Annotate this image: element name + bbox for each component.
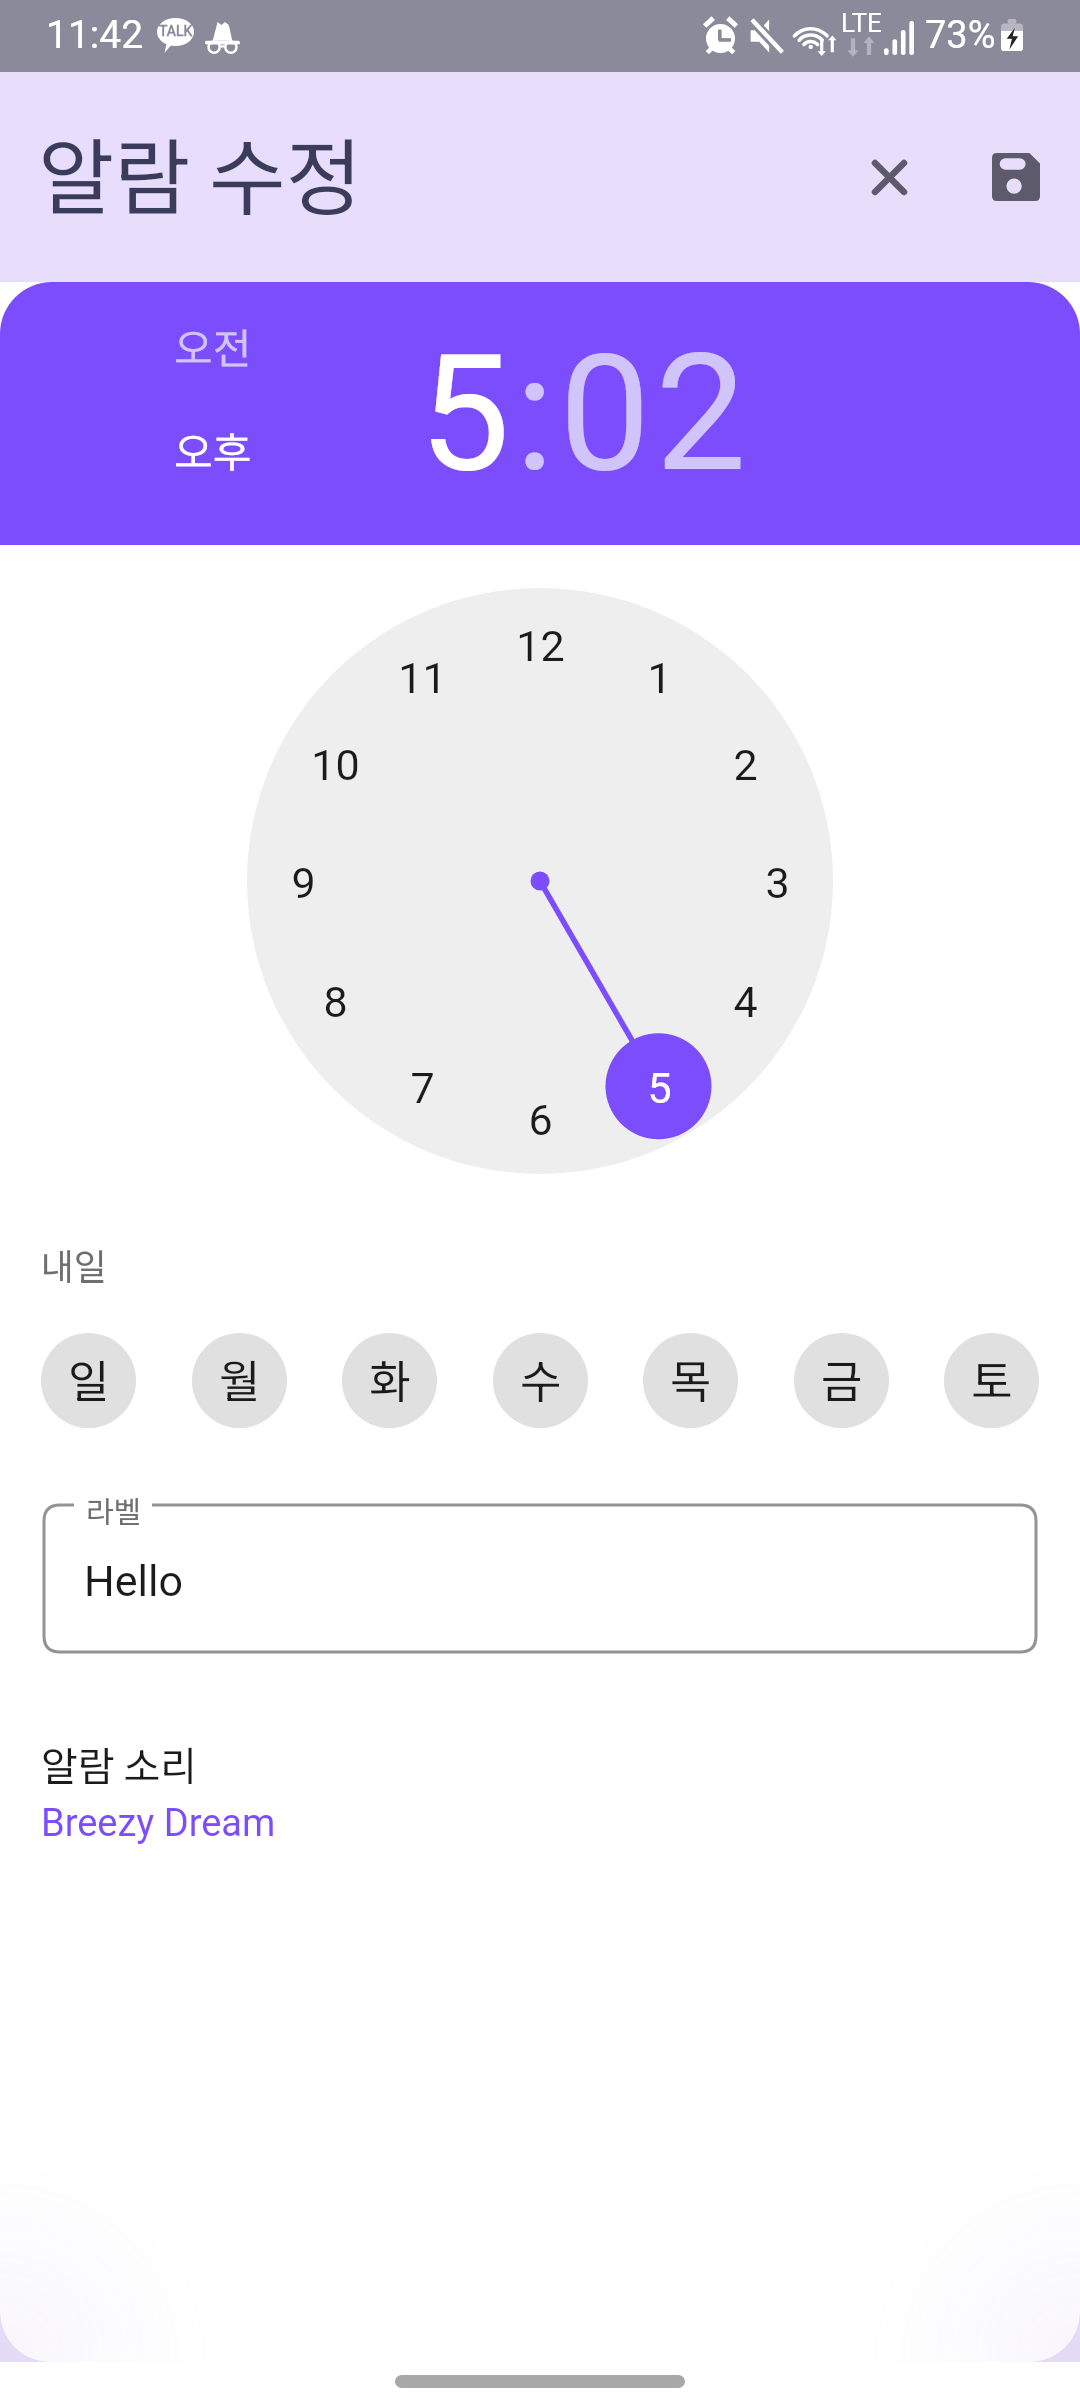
button[interactable]: 수 [493,1333,588,1428]
staticText: 73% [925,13,996,58]
button[interactable]: 토 [944,1333,1039,1428]
staticText: 11:42 [46,12,144,58]
staticText: 5 [647,1063,672,1113]
staticText: Hello [84,1556,183,1606]
staticText: 금 [821,1346,863,1411]
button[interactable]: Hello [44,1505,1036,1652]
staticText: 오후 [174,419,252,480]
staticText: 4 [733,977,758,1027]
button[interactable]: 1 [247,588,833,1174]
button[interactable]: 금 [794,1333,889,1428]
staticText: 라벨 [86,1488,142,1531]
button[interactable]: 오전 [155,306,271,380]
staticText: TALK [159,23,193,39]
button[interactable]: 월 [192,1333,287,1428]
staticText: 수 [520,1346,562,1411]
staticText: 2 [733,740,758,790]
staticText: 일 [68,1346,110,1411]
staticText: 7 [410,1063,435,1113]
staticText: 월 [219,1346,261,1411]
staticText: 10 [311,740,360,790]
staticText: 12 [516,621,565,671]
staticText: 6 [528,1095,553,1145]
staticText: 9 [291,858,316,908]
button[interactable]: 5:02 [419,319,752,509]
staticText: 8 [323,977,348,1027]
button[interactable]: 오후 [155,410,271,484]
staticText: 목 [670,1346,712,1411]
staticText: 알람 소리 [41,1735,198,1793]
staticText: 토 [971,1346,1013,1411]
staticText: 11 [398,653,447,703]
button[interactable]: 일 [41,1333,136,1428]
button[interactable]: 화 [342,1333,437,1428]
staticText: 화 [369,1346,411,1411]
staticText: 오전 [174,315,252,376]
staticText: Breezy Dream [41,1801,276,1846]
button[interactable]: Save [961,122,1071,232]
staticText: 내일 [41,1238,108,1290]
button[interactable]: 알람 소리 [0,1725,1080,1866]
button[interactable]: 목 [643,1333,738,1428]
button[interactable]: Close [834,122,944,232]
staticText: 3 [765,858,790,908]
staticText: LTE [841,8,881,38]
staticText: 알람 수정 [38,112,363,232]
staticText: 1 [647,653,672,703]
